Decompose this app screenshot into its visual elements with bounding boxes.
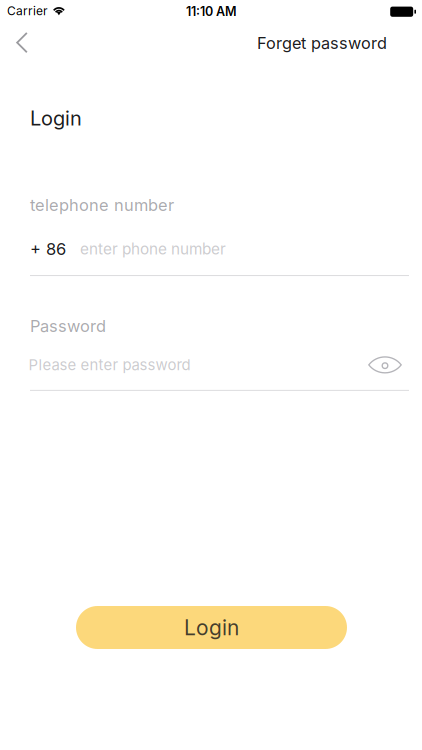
staticText: 11:10 AM (186, 4, 237, 19)
button[interactable]: Please enter password (30, 350, 340, 380)
button[interactable]: Show password (361, 350, 409, 380)
staticText: telephone number (30, 195, 174, 215)
staticText: Forget password (257, 33, 387, 53)
button[interactable]: Forget password (245, 21, 399, 63)
staticText: Login (30, 106, 82, 130)
staticText: Carrier (7, 4, 48, 18)
button[interactable]: + 86 (30, 236, 409, 262)
staticText: + 86 (30, 239, 66, 259)
staticText: Password (30, 316, 106, 336)
staticText: Login (184, 615, 239, 640)
button[interactable]: Login (76, 606, 347, 649)
staticText: Please enter password (28, 356, 190, 374)
button[interactable]: Back (0, 21, 44, 63)
staticText: enter phone number (80, 240, 226, 258)
